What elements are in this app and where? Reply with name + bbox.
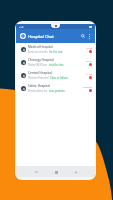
button[interactable]: Search: [80, 33, 86, 39]
staticText: Chirurgy Hospital: [28, 58, 54, 62]
staticText: Monday: [83, 85, 93, 88]
button[interactable]: Recents: [34, 170, 38, 174]
staticText: Class to follow: [50, 76, 68, 80]
button[interactable]: Saline Hospital: [16, 82, 95, 95]
staticText: for the test: [49, 50, 63, 54]
staticText: 11:20: [86, 72, 93, 75]
staticText: 10:30: [86, 46, 93, 49]
button[interactable]: Home: [54, 170, 58, 174]
staticText: Send me results: [28, 50, 48, 54]
staticText: visit the doc: [49, 63, 64, 67]
button[interactable]: App logo: [20, 33, 26, 39]
button[interactable]: Central Hospital: [16, 69, 95, 82]
staticText: new patients: [49, 89, 65, 93]
staticText: Practice Prenatal: [28, 76, 49, 80]
button[interactable]: Medical Hospital: [16, 43, 95, 56]
staticText: Hospital Chat: [28, 34, 54, 39]
staticText: Great advice for: [28, 89, 48, 93]
button[interactable]: Chirurgy Hospital: [16, 56, 95, 69]
button[interactable]: Back: [73, 170, 77, 174]
staticText: Medical Hospital: [28, 45, 53, 49]
staticText: Saline Hospital: [28, 84, 50, 88]
staticText: 09:14: [86, 59, 93, 62]
staticText: Central Hospital: [28, 71, 52, 75]
button[interactable]: More options: [87, 34, 92, 39]
staticText: Today 08:30 am: [28, 63, 48, 67]
